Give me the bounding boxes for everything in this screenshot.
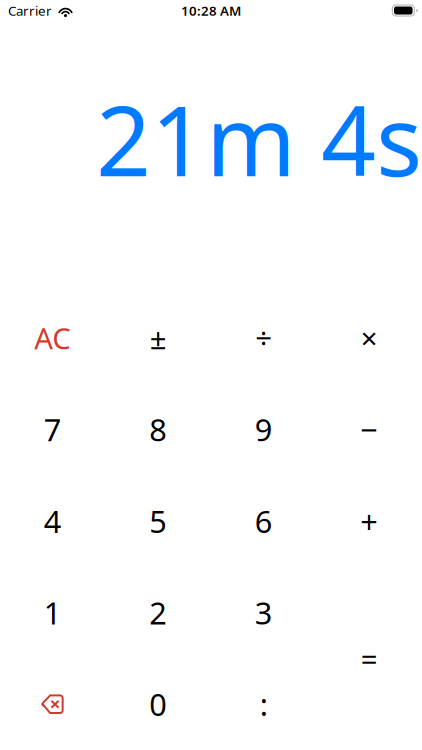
button[interactable]: 5 <box>105 475 211 567</box>
staticText: ÷ <box>255 318 272 357</box>
button[interactable]: 9 <box>211 384 316 475</box>
button[interactable]: Plus <box>316 475 422 567</box>
button[interactable]: Colon <box>211 658 316 750</box>
staticText: 4 <box>44 501 62 541</box>
staticText: 0 <box>149 684 167 724</box>
button[interactable]: Divide <box>211 292 316 384</box>
staticText: 1 <box>44 592 62 633</box>
staticText: 5 <box>149 501 167 541</box>
button[interactable]: All clear <box>0 292 105 384</box>
staticText: × <box>361 318 378 357</box>
staticText: 10:28 AM <box>181 2 241 19</box>
staticText: 7 <box>44 409 62 450</box>
staticText: ± <box>150 318 167 357</box>
button[interactable]: Equals <box>316 567 422 750</box>
staticText: 21m 4s <box>96 75 422 203</box>
button[interactable]: 3 <box>211 567 316 658</box>
staticText: 9 <box>255 409 273 450</box>
staticText: 6 <box>255 501 273 541</box>
staticText: 3 <box>255 592 273 633</box>
button[interactable]: 7 <box>0 384 105 475</box>
staticText: = <box>361 639 378 678</box>
button[interactable]: 1 <box>0 567 105 658</box>
button[interactable]: Delete <box>0 658 105 750</box>
button[interactable]: 0 <box>105 658 211 750</box>
staticText: AC <box>34 318 71 357</box>
button[interactable]: 8 <box>105 384 211 475</box>
button[interactable]: 4 <box>0 475 105 567</box>
staticText: : <box>260 684 268 724</box>
staticText: − <box>360 409 378 450</box>
button[interactable]: Multiply <box>316 292 422 384</box>
button[interactable]: 6 <box>211 475 316 567</box>
staticText: 8 <box>149 409 167 450</box>
staticText: Carrier <box>8 2 52 19</box>
staticText: 2 <box>149 592 167 633</box>
button[interactable]: Plus minus <box>105 292 211 384</box>
button[interactable]: 2 <box>105 567 211 658</box>
staticText: + <box>360 501 378 541</box>
button[interactable]: Minus <box>316 384 422 475</box>
